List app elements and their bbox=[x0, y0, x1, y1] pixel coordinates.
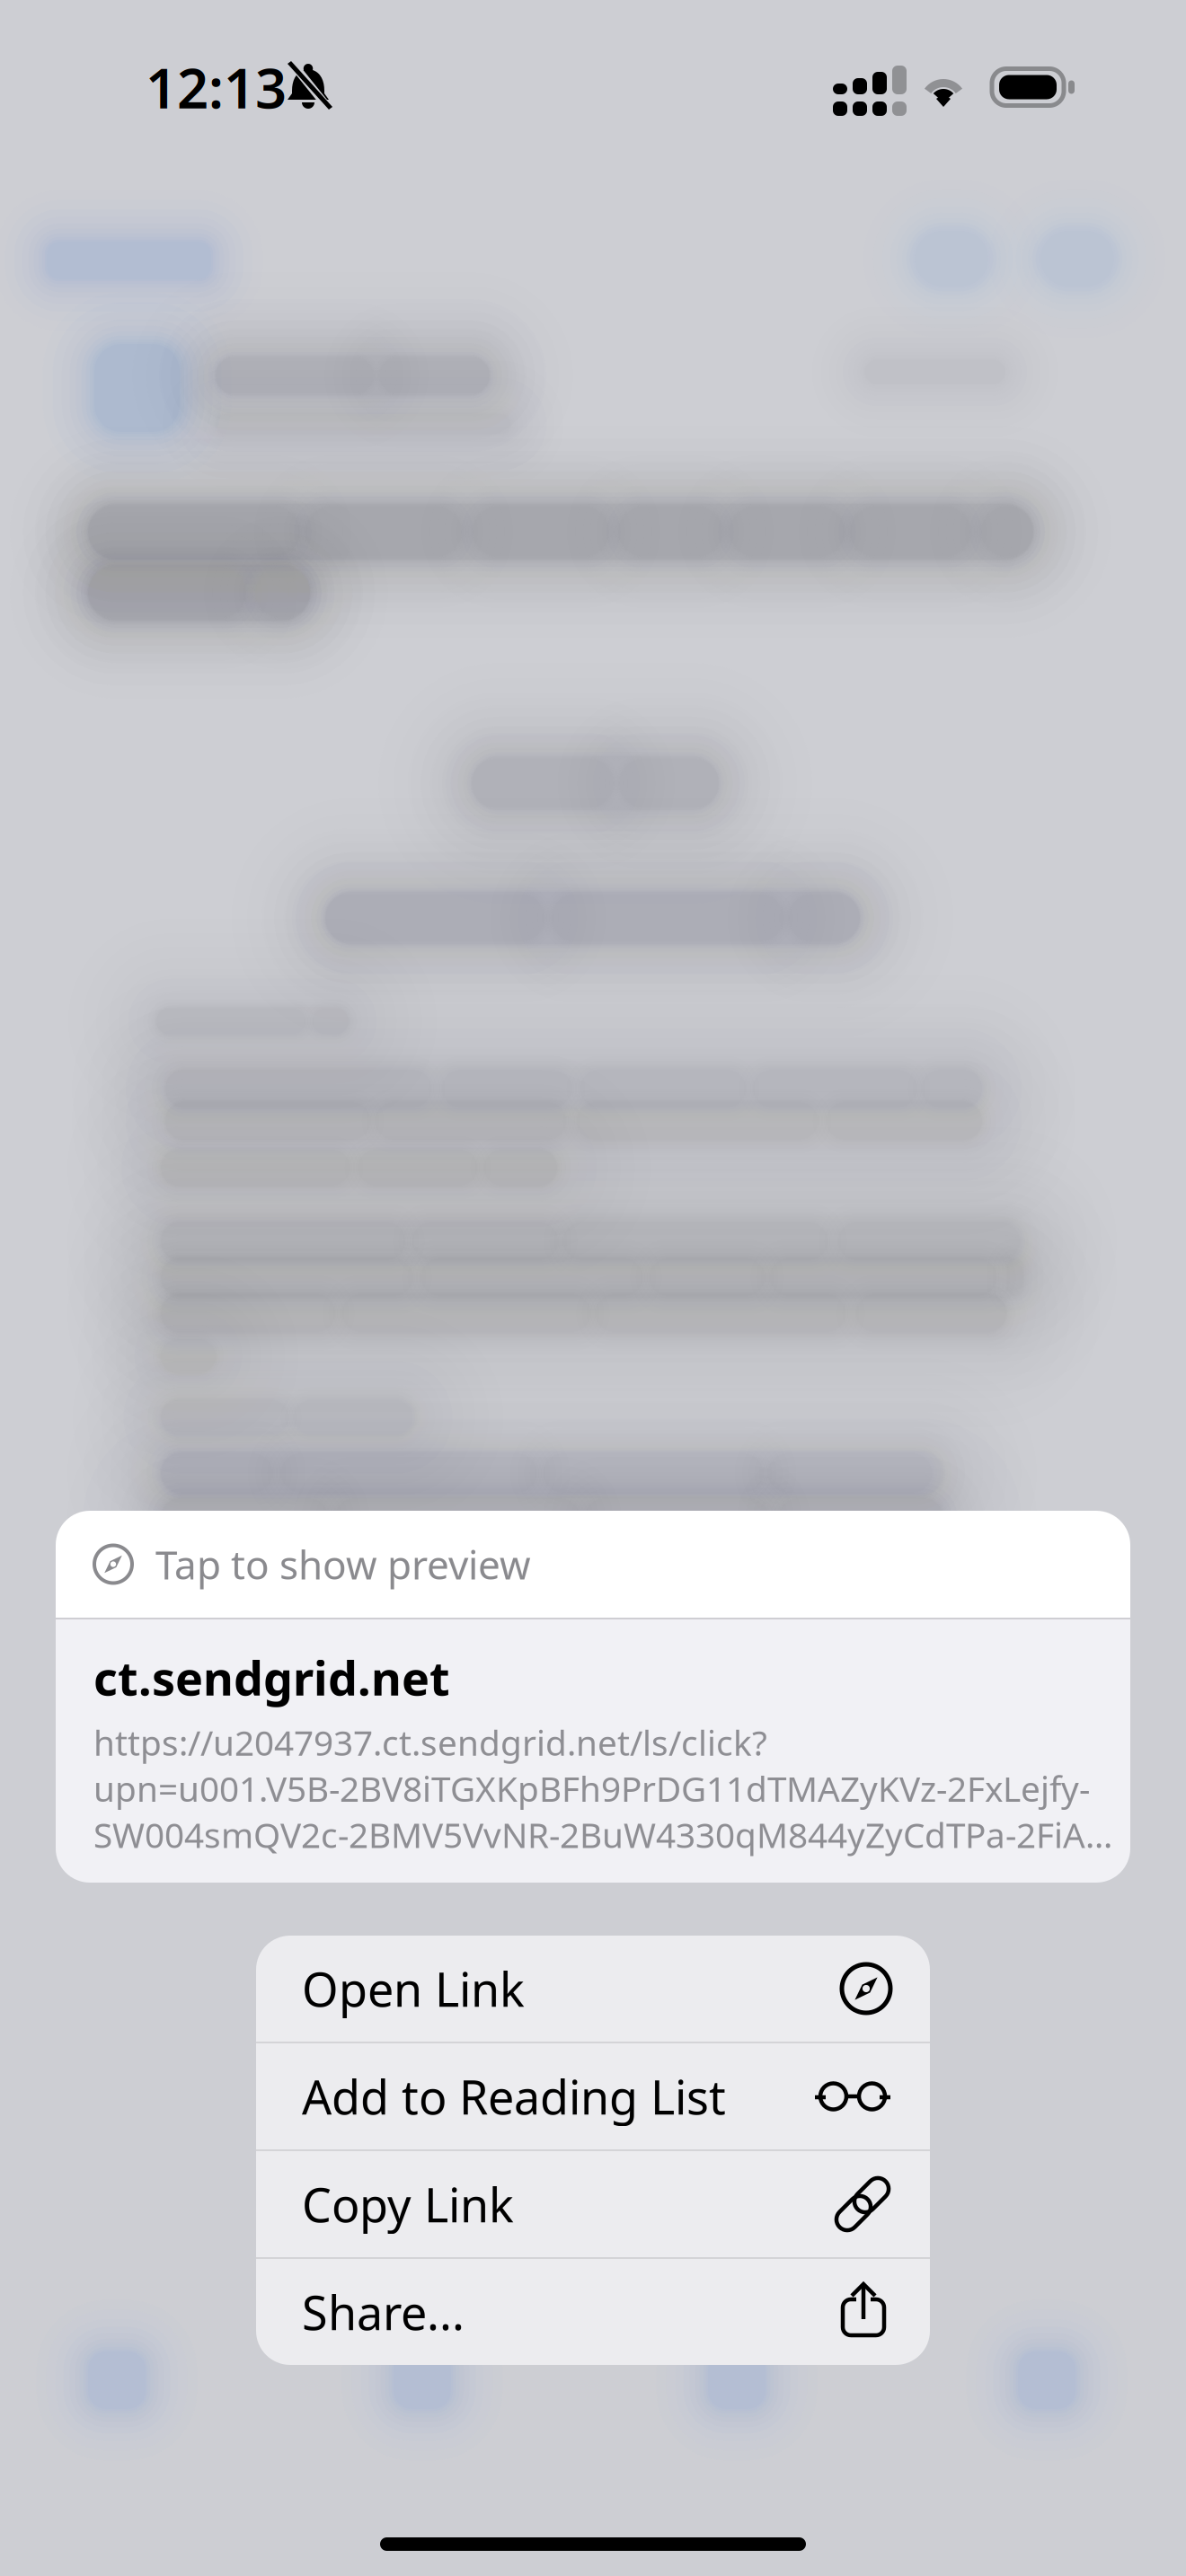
staticText: Open Link bbox=[302, 1958, 525, 2020]
button[interactable]: Open Link bbox=[256, 1936, 930, 2042]
staticText: upn=u001.V5B-2BV8iTGXKpBFh9PrDG11dTMAZyK… bbox=[93, 1765, 1090, 1811]
staticText: ct.sendgrid.net bbox=[93, 1646, 450, 1708]
staticText: Copy Link bbox=[302, 2173, 514, 2235]
staticText: 12:13 bbox=[146, 51, 287, 124]
button[interactable]: Add to Reading List bbox=[256, 2043, 930, 2149]
staticText: https://u2047937.ct.sendgrid.net/ls/clic… bbox=[93, 1719, 767, 1765]
button[interactable]: Tap to show preview bbox=[56, 1511, 1130, 1618]
staticText: SW004smQV2c-2BMV5VvNR-2BuW4330qM844yZyCd… bbox=[93, 1811, 1112, 1857]
button[interactable]: Share... bbox=[256, 2259, 930, 2365]
staticText: Share... bbox=[302, 2281, 465, 2343]
staticText: Tap to show preview bbox=[155, 1538, 531, 1590]
button[interactable]: Copy Link bbox=[256, 2151, 930, 2257]
staticText: Add to Reading List bbox=[302, 2065, 726, 2127]
